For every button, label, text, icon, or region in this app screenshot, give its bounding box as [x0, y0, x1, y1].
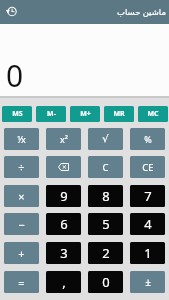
button[interactable]: 2 [88, 242, 123, 264]
button[interactable]: M- [36, 106, 66, 122]
staticText: ÷ [18, 160, 25, 175]
staticText: M- [47, 109, 56, 119]
button[interactable]: 4 [130, 213, 165, 235]
staticText: − [18, 217, 25, 232]
button[interactable]: MS [2, 106, 32, 122]
staticText: 1 [144, 244, 152, 262]
button[interactable]: 6 [46, 213, 81, 235]
button[interactable]: × [4, 185, 39, 207]
button[interactable]: 7 [130, 185, 165, 207]
staticText: = [18, 275, 25, 290]
staticText: 0 [6, 55, 24, 96]
button[interactable]: x² [46, 128, 81, 150]
staticText: x² [60, 133, 68, 145]
staticText: C [102, 161, 109, 174]
button[interactable]: CE [130, 156, 165, 178]
button[interactable]: √ [88, 128, 123, 150]
button[interactable] [46, 156, 81, 178]
staticText: MR [113, 109, 125, 119]
staticText: 8 [102, 187, 110, 205]
staticText: × [18, 189, 25, 204]
button[interactable]: ⅟x [4, 128, 39, 150]
button[interactable]: M+ [70, 106, 100, 122]
staticText: 6 [60, 215, 68, 233]
staticText: % [144, 133, 152, 145]
button[interactable]: 0 [88, 271, 123, 293]
staticText: 4 [144, 215, 152, 233]
button[interactable]: MR [104, 106, 134, 122]
staticText: 2 [102, 244, 110, 262]
staticText: 3 [60, 244, 68, 262]
staticText: + [18, 246, 25, 261]
button[interactable]: ± [130, 271, 165, 293]
button[interactable]: 8 [88, 185, 123, 207]
staticText: ماشين حساب [117, 6, 166, 18]
staticText: , [62, 273, 66, 291]
staticText: ⅟x [17, 133, 26, 145]
button[interactable]: 3 [46, 242, 81, 264]
button[interactable]: ÷ [4, 156, 39, 178]
button[interactable]: MC [138, 106, 168, 122]
staticText: CE [142, 161, 154, 174]
button[interactable]: ماشين حساب [0, 0, 169, 24]
button[interactable]: 9 [46, 185, 81, 207]
staticText: 7 [144, 187, 152, 205]
button[interactable]: 1 [130, 242, 165, 264]
button[interactable]: 5 [88, 213, 123, 235]
button[interactable]: = [4, 271, 39, 293]
button[interactable]: , [46, 271, 81, 293]
staticText: √ [102, 133, 109, 145]
staticText: M+ [80, 109, 91, 119]
button[interactable]: % [130, 128, 165, 150]
staticText: 5 [102, 215, 110, 233]
button[interactable]: C [88, 156, 123, 178]
staticText: 9 [60, 187, 68, 205]
button[interactable]: + [4, 242, 39, 264]
button[interactable]: − [4, 213, 39, 235]
staticText: 0 [102, 273, 110, 291]
staticText: MS [12, 109, 23, 119]
staticText: ± [145, 275, 151, 289]
staticText: MC [147, 109, 159, 119]
